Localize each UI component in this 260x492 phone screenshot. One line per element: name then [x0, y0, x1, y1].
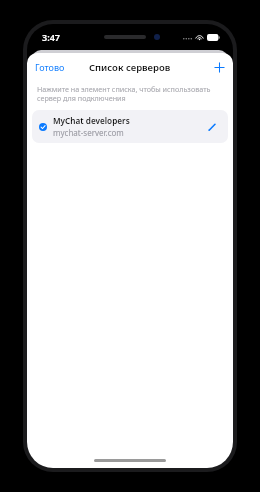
staticText: 3:47 [42, 31, 60, 43]
staticText: Готово [35, 61, 65, 73]
staticText: MyChat developers [53, 115, 130, 126]
button[interactable]: Add server [206, 58, 233, 77]
staticText: mychat-server.com [53, 127, 124, 138]
button[interactable]: Edit server [204, 119, 220, 135]
button[interactable]: MyChat developers [32, 110, 228, 143]
staticText: Нажмите на элемент списка, чтобы использ… [37, 84, 221, 104]
staticText: Список серверов [89, 61, 171, 74]
button[interactable]: Готово [27, 56, 73, 78]
